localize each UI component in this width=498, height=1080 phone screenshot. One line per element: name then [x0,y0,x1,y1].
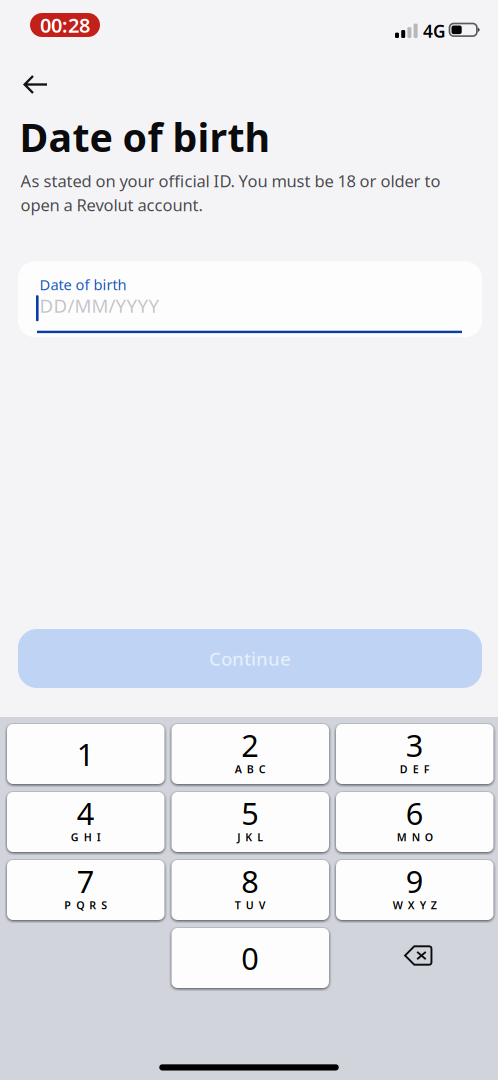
staticText: 7 [77,861,95,901]
button[interactable]: 3 [336,724,493,784]
staticText: Date of birth [19,110,270,164]
staticText: U [246,898,254,912]
staticText: F [424,762,430,776]
staticText: D [400,762,408,776]
staticText: C [259,762,266,776]
staticText: G [71,830,79,844]
staticText: A [235,762,242,776]
staticText: L [257,830,263,844]
staticText: H [84,830,92,844]
staticText: Continue [209,646,291,671]
staticText: 2 [241,725,259,765]
button[interactable]: Back [23,65,57,104]
staticText: T [235,898,241,912]
staticText: DD/MM/YYYY [39,293,159,318]
button[interactable]: Delete [336,928,493,988]
staticText: B [247,762,254,776]
staticText: O [425,830,433,844]
button[interactable]: 1 [7,724,164,784]
staticText: 9 [406,861,424,901]
button[interactable]: 2 [171,724,329,784]
staticText: V [259,898,266,912]
staticText: X [408,898,415,912]
staticText: S [101,898,107,912]
staticText: Date of birth [39,275,126,294]
staticText: 8 [241,861,259,901]
staticText: 4G [423,20,446,43]
staticText: As stated on your official ID. You must … [20,170,440,216]
staticText: N [412,830,420,844]
staticText: E [413,762,419,776]
button[interactable]: 6 [336,792,493,852]
staticText: R [89,898,96,912]
staticText: M [397,830,407,844]
staticText: 5 [241,793,259,833]
staticText: 00:28 [40,12,90,38]
staticText: I [97,830,101,844]
button[interactable]: 5 [171,792,329,852]
staticText: P [64,898,71,912]
staticText: W [393,898,403,912]
staticText: K [245,830,252,844]
staticText: 6 [406,793,424,833]
button[interactable]: 4 [7,792,164,852]
staticText: 3 [406,725,424,765]
staticText: Y [420,898,426,912]
staticText: 0 [241,938,259,978]
button[interactable]: Continue [18,629,482,688]
button[interactable]: 8 [171,860,329,920]
staticText: 4 [77,793,95,833]
button[interactable]: 7 [7,860,164,920]
button[interactable]: 9 [336,860,493,920]
button[interactable]: 0 [171,928,329,988]
staticText: 1 [77,734,95,774]
staticText: Z [431,898,437,912]
staticText: J [237,830,240,844]
staticText: Q [76,898,84,912]
